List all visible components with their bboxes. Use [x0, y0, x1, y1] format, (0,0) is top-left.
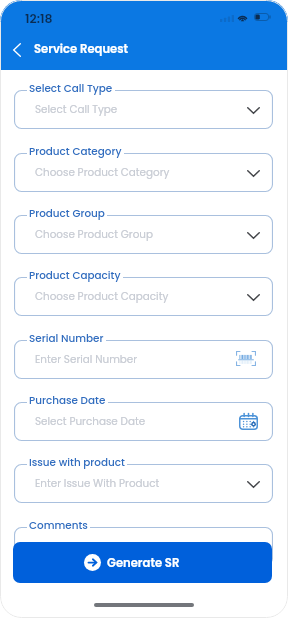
- staticText: Product Group: [29, 206, 105, 221]
- staticText: Product Capacity: [29, 268, 121, 283]
- staticText: Service Request: [34, 41, 129, 57]
- staticText: Comments: [29, 518, 88, 533]
- staticText: Product Category: [29, 144, 122, 159]
- staticText: Choose Product Group: [35, 227, 153, 242]
- staticText: Issue with product: [29, 455, 125, 470]
- button[interactable]: Choose Product Category: [14, 153, 273, 192]
- staticText: Generate SR: [107, 555, 180, 571]
- button[interactable]: Choose Product Capacity: [14, 277, 273, 316]
- staticText: Select Call Type: [29, 81, 113, 96]
- staticText: Select Purchase Date: [35, 414, 146, 429]
- button[interactable]: Select Call Type: [14, 90, 273, 129]
- button[interactable]: Enter Serial Number: [14, 340, 273, 379]
- button[interactable]: Generate SR: [13, 542, 272, 583]
- staticText: Purchase Date: [29, 393, 106, 408]
- button[interactable]: Select Purchase Date: [14, 402, 273, 441]
- staticText: Serial Number: [29, 331, 104, 346]
- staticText: Select Call Type: [35, 102, 118, 117]
- staticText: Enter Issue With Product: [35, 476, 160, 491]
- button[interactable]: Enter Issue With Product: [14, 464, 273, 503]
- staticText: Choose Product Category: [35, 165, 170, 180]
- staticText: 12:18: [25, 10, 53, 27]
- staticText: Enter Serial Number: [35, 352, 138, 367]
- staticText: Choose Product Capacity: [35, 289, 169, 304]
- button[interactable]: [14, 527, 273, 566]
- button[interactable]: Back: [7, 39, 27, 59]
- button[interactable]: Choose Product Group: [14, 215, 273, 254]
